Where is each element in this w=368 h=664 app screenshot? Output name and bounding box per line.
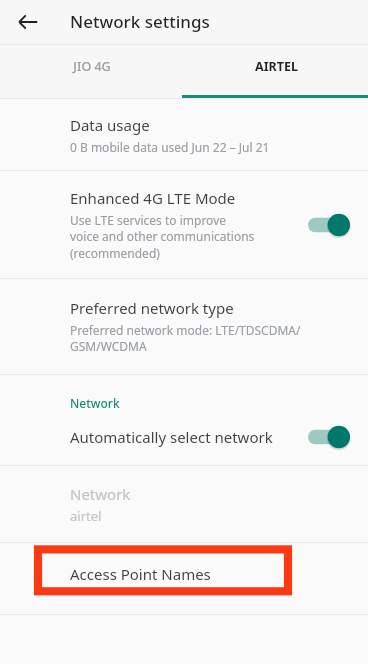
staticText: AIRTEL bbox=[255, 58, 298, 75]
button[interactable]: Back bbox=[10, 4, 46, 40]
button[interactable]: Enhanced 4G LTE Mode toggle bbox=[306, 212, 352, 238]
staticText: Use LTE services to improve voice and ot… bbox=[70, 212, 255, 262]
button[interactable]: Network bbox=[0, 466, 368, 542]
staticText: Network bbox=[70, 484, 131, 504]
staticText: Data usage bbox=[70, 115, 150, 135]
staticText: Automatically select network bbox=[70, 427, 294, 447]
button[interactable]: Automatically select network toggle bbox=[306, 424, 352, 450]
button[interactable]: JIO 4G bbox=[0, 45, 184, 98]
staticText: JIO 4G bbox=[73, 58, 111, 75]
button[interactable]: AIRTEL bbox=[184, 45, 368, 98]
staticText: 0 B mobile data used Jun 22 – Jul 21 bbox=[70, 139, 270, 155]
button[interactable]: Preferred network type bbox=[0, 279, 368, 374]
staticText: Enhanced 4G LTE Mode bbox=[70, 188, 236, 208]
staticText: Network bbox=[70, 395, 120, 411]
staticText: Preferred network type bbox=[70, 298, 234, 318]
button[interactable]: Automatically select network bbox=[0, 411, 368, 463]
staticText: Preferred network mode: LTE/TDSCDMA/ GSM… bbox=[70, 322, 301, 355]
staticText: airtel bbox=[70, 507, 102, 525]
staticText: Access Point Names bbox=[70, 564, 211, 584]
staticText: Network settings bbox=[70, 10, 210, 33]
button[interactable]: Enhanced 4G LTE Mode bbox=[0, 171, 368, 278]
button[interactable]: Data usage bbox=[0, 99, 368, 170]
button[interactable]: Access Point Names bbox=[0, 543, 368, 614]
